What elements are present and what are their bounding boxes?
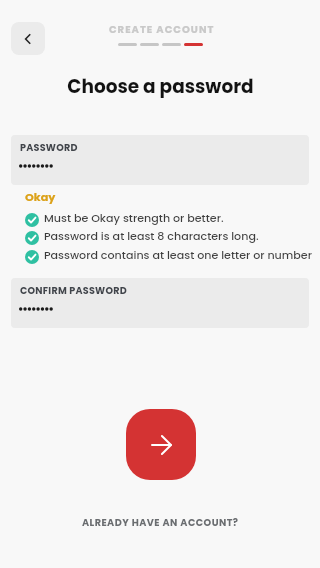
staticText: Choose a password [67,74,254,100]
button[interactable]: Back [11,22,45,55]
button[interactable]: CONFIRM PASSWORD [11,278,309,328]
staticText: CONFIRM PASSWORD [20,284,127,297]
staticText: Must be Okay strength or better. [44,210,224,226]
staticText: Password is at least 8 characters long. [44,228,259,244]
staticText: Okay [25,189,56,205]
staticText: CREATE ACCOUNT [109,22,215,36]
staticText: ALREADY HAVE AN ACCOUNT? [82,516,239,530]
button[interactable]: Continue [126,409,196,480]
staticText: PASSWORD [20,141,78,154]
button[interactable]: ALREADY HAVE AN ACCOUNT? [0,506,320,540]
button[interactable]: PASSWORD [11,135,309,185]
staticText: Password contains at least one letter or… [44,247,312,263]
